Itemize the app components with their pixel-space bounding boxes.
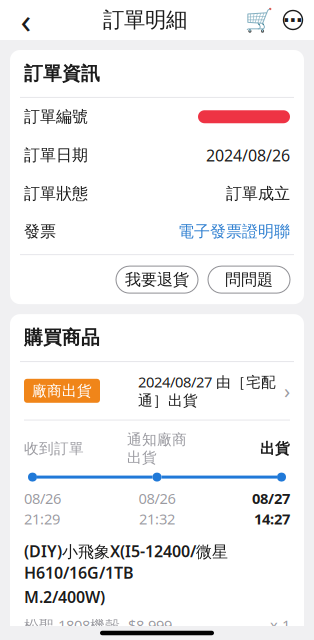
staticText: 2024/08/27 由［宅配通］出貨: [138, 372, 276, 410]
staticText: 🛒: [245, 7, 273, 33]
staticText: 我要退貨: [125, 270, 189, 289]
staticText: 收到訂單: [24, 440, 84, 458]
button[interactable]: 我要退貨: [116, 266, 198, 293]
staticText: 14:27: [254, 509, 290, 529]
staticText: 通知廠商出貨: [127, 431, 187, 467]
staticText: 08/26: [24, 489, 61, 508]
staticText: ⋯: [283, 9, 303, 31]
staticText: 訂單狀態: [24, 184, 88, 203]
staticText: 21:29: [24, 509, 60, 529]
staticText: M.2/400W): [24, 586, 105, 607]
button[interactable]: More: [276, 1, 310, 39]
staticText: 2024/08/26: [206, 145, 290, 166]
staticText: 問問題: [225, 270, 273, 289]
button[interactable]: 電子發票證明聯: [178, 221, 290, 241]
staticText: ›: [284, 377, 290, 404]
staticText: 出貨: [260, 440, 290, 458]
staticText: 訂單明細: [103, 7, 187, 33]
staticText: 訂單成立: [226, 184, 290, 203]
staticText: 購買商品: [24, 326, 100, 349]
staticText: 訂單資訊: [24, 62, 100, 85]
button[interactable]: 問問題: [208, 266, 290, 293]
staticText: 21:32: [139, 509, 175, 529]
staticText: x 1: [270, 615, 290, 635]
staticText: 廠商出貨: [32, 382, 92, 400]
staticText: 08/27: [252, 489, 290, 508]
staticText: (DIY)小飛象X(I5-12400/微星H610/16G/1TB: [24, 540, 228, 583]
staticText: 08/26: [138, 489, 175, 508]
button[interactable]: Cart: [242, 1, 276, 39]
button[interactable]: Back: [4, 1, 48, 39]
staticText: ‹: [20, 0, 31, 43]
staticText: 發票: [24, 221, 56, 241]
staticText: 松聖 1808機殼: [24, 615, 120, 635]
button[interactable]: 廠商出貨: [10, 362, 304, 420]
staticText: $8,999: [128, 615, 172, 635]
staticText: 訂單編號: [24, 107, 88, 127]
staticText: 電子發票證明聯: [178, 221, 290, 241]
staticText: 訂單日期: [24, 145, 88, 165]
